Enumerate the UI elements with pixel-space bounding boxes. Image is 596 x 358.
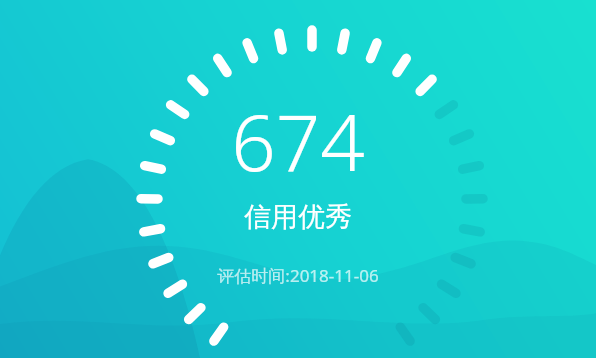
staticText: 674 bbox=[231, 88, 365, 194]
staticText: 信用优秀 bbox=[244, 200, 352, 234]
button[interactable]: Credit score gauge bbox=[0, 0, 596, 358]
staticText: 评估时间:2018-11-06 bbox=[217, 264, 379, 287]
